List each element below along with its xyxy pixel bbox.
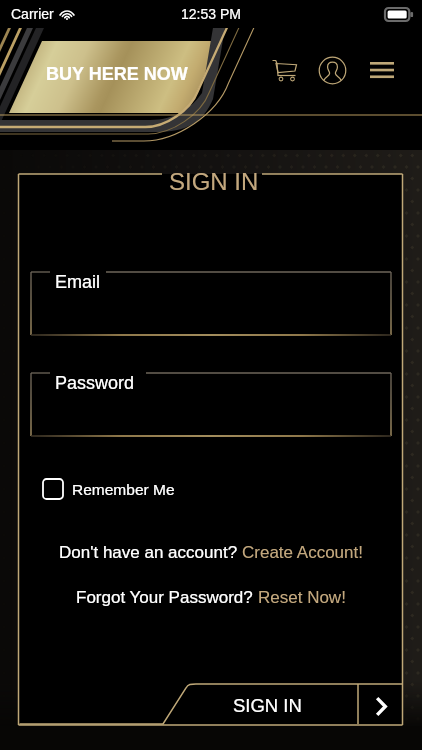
button[interactable]: Reset Now! bbox=[258, 588, 346, 607]
staticText: BUY HERE NOW bbox=[46, 64, 188, 84]
staticText: Don't have an account? bbox=[59, 543, 242, 562]
staticText: Password bbox=[55, 373, 135, 393]
staticText: Carrier bbox=[11, 6, 54, 22]
button[interactable]: Create Account! bbox=[242, 543, 363, 562]
button[interactable]: Menu bbox=[363, 51, 401, 89]
staticText: 12:53 PM bbox=[181, 6, 241, 22]
button[interactable]: SIGN IN bbox=[186, 685, 348, 725]
button[interactable]: Cart bbox=[265, 51, 303, 89]
staticText: Email bbox=[55, 272, 101, 292]
button[interactable]: Account bbox=[313, 51, 351, 89]
staticText: SIGN IN bbox=[169, 168, 259, 195]
button[interactable]: Next bbox=[359, 686, 402, 726]
button[interactable]: Remember Me bbox=[43, 479, 175, 499]
staticText: Forgot Your Password? bbox=[76, 588, 258, 607]
staticText: SIGN IN bbox=[233, 695, 302, 716]
staticText: Remember Me bbox=[72, 481, 175, 498]
